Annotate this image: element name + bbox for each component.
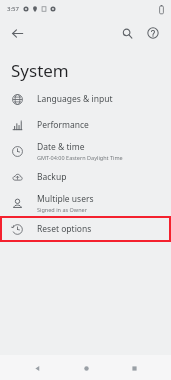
staticText: System: [11, 59, 69, 82]
staticText: Multiple users: [37, 193, 94, 205]
staticText: Languages & input: [37, 93, 113, 105]
button[interactable]: Home: [74, 356, 98, 380]
button[interactable]: Date & time: [0, 138, 171, 164]
button[interactable]: Multiple users: [0, 190, 171, 216]
button[interactable]: Performance: [0, 112, 171, 138]
button[interactable]: Search: [114, 20, 140, 46]
staticText: Reset options: [37, 223, 92, 235]
staticText: 3:57: [7, 5, 19, 13]
staticText: Signed in as Owner: [37, 206, 87, 213]
button[interactable]: Reset options: [0, 216, 171, 242]
button[interactable]: Backup: [0, 164, 171, 190]
staticText: Date & time: [37, 141, 85, 153]
staticText: Performance: [37, 119, 89, 131]
button[interactable]: Languages & input: [0, 86, 171, 112]
staticText: Backup: [37, 171, 67, 183]
button[interactable]: Back: [4, 20, 30, 46]
button[interactable]: Back: [25, 356, 49, 380]
staticText: GMT-04:00 Eastern Daylight Time: [37, 154, 123, 161]
button[interactable]: Recent apps: [122, 356, 146, 380]
button[interactable]: Help: [140, 20, 166, 46]
